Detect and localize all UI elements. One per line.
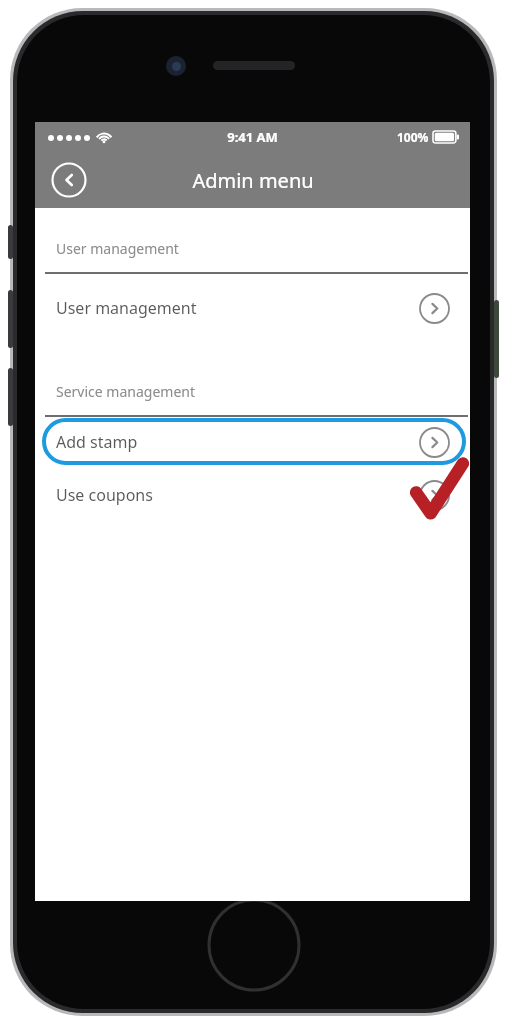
staticText: User management: [56, 297, 197, 319]
staticText: Use coupons: [56, 484, 153, 506]
staticText: Service management: [56, 382, 195, 401]
staticText: 9:41 AM: [227, 128, 278, 146]
staticText: User management: [56, 239, 179, 258]
staticText: 100%: [397, 129, 429, 145]
button[interactable]: Use coupons: [35, 467, 470, 523]
button[interactable]: Back: [51, 162, 87, 198]
staticText: Admin menu: [192, 167, 314, 194]
staticText: Add stamp: [56, 431, 138, 453]
button[interactable]: User management: [35, 274, 470, 342]
button[interactable]: Add stamp: [35, 417, 470, 467]
